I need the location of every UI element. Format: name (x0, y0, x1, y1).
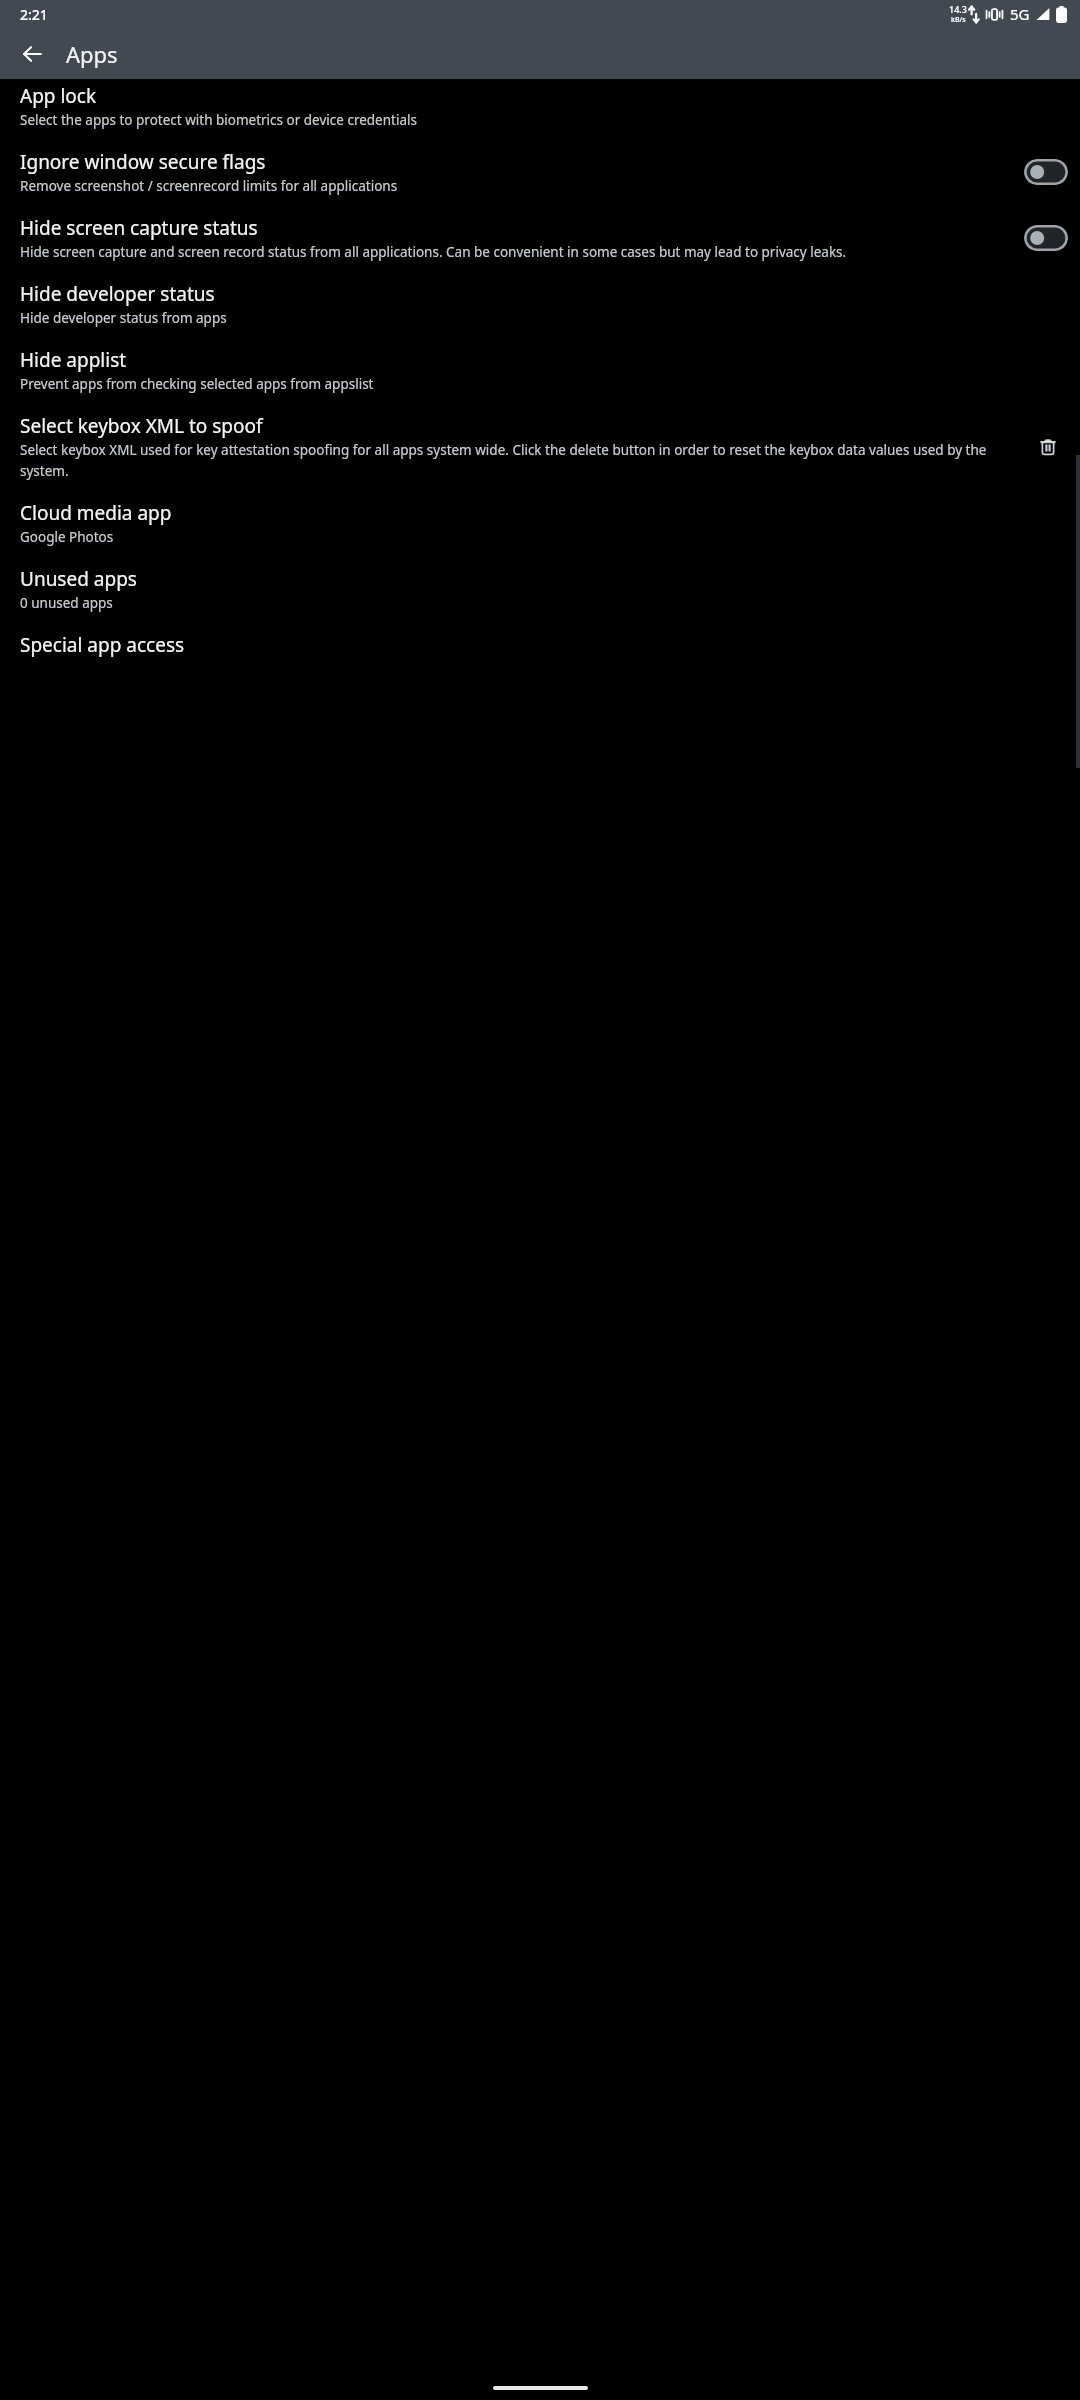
staticText: Google Photos (20, 528, 114, 546)
staticText: Remove screenshot / screenrecord limits … (20, 177, 398, 195)
staticText: App lock (20, 83, 97, 109)
staticText: Hide developer status (20, 281, 215, 307)
staticText: Hide screen capture and screen record st… (20, 243, 847, 261)
staticText: Ignore window secure flags (20, 149, 266, 175)
staticText: Hide developer status from apps (20, 309, 227, 327)
button[interactable]: Toggle (1024, 159, 1068, 185)
staticText: kB/s (951, 15, 966, 25)
button[interactable]: Hide screen capture status (0, 195, 1080, 261)
staticText: 5G (1010, 4, 1030, 24)
button[interactable]: App lock (0, 79, 1080, 129)
staticText: 0 unused apps (20, 594, 113, 612)
staticText: Hide screen capture status (20, 215, 258, 241)
button[interactable]: Back (8, 30, 56, 78)
staticText: Select keybox XML used for key attestati… (20, 441, 1022, 480)
staticText: Hide applist (20, 347, 127, 373)
staticText: Select keybox XML to spoof (20, 413, 263, 439)
button[interactable]: Toggle (1024, 225, 1068, 251)
button[interactable]: Hide applist (0, 327, 1080, 393)
staticText: Apps (66, 39, 118, 69)
button[interactable]: Select keybox XML to spoof (0, 393, 1080, 480)
button[interactable]: Cloud media app (0, 480, 1080, 546)
staticText: Special app access (20, 632, 185, 658)
staticText: Unused apps (20, 566, 137, 592)
staticText: 2:21 (20, 5, 48, 24)
staticText: Select the apps to protect with biometri… (20, 111, 417, 129)
button[interactable]: Special app access (0, 612, 1080, 658)
button[interactable]: Delete keybox (1028, 427, 1068, 467)
staticText: 14.3 (949, 3, 967, 15)
button[interactable]: Hide developer status (0, 261, 1080, 327)
staticText: Prevent apps from checking selected apps… (20, 375, 374, 393)
button[interactable]: Unused apps (0, 546, 1080, 612)
staticText: Cloud media app (20, 500, 172, 526)
button[interactable]: Ignore window secure flags (0, 129, 1080, 195)
